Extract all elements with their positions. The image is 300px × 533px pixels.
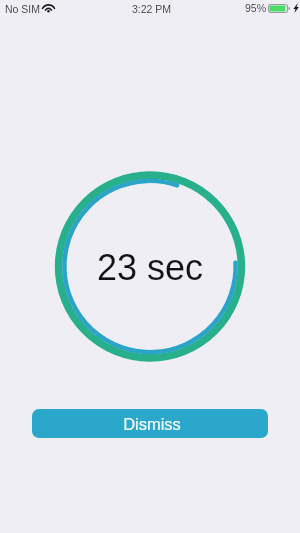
staticText: 95% xyxy=(245,2,267,14)
staticText: No SIM xyxy=(5,3,41,15)
staticText: 23 sec xyxy=(97,247,204,287)
other: Battery 95 percent, charging xyxy=(268,4,292,13)
other: Charging xyxy=(293,3,299,13)
other: Wi-Fi signal xyxy=(42,3,55,12)
button[interactable]: Dismiss xyxy=(32,409,268,438)
staticText: 3:22 PM xyxy=(132,3,172,15)
staticText: Dismiss xyxy=(123,415,181,433)
